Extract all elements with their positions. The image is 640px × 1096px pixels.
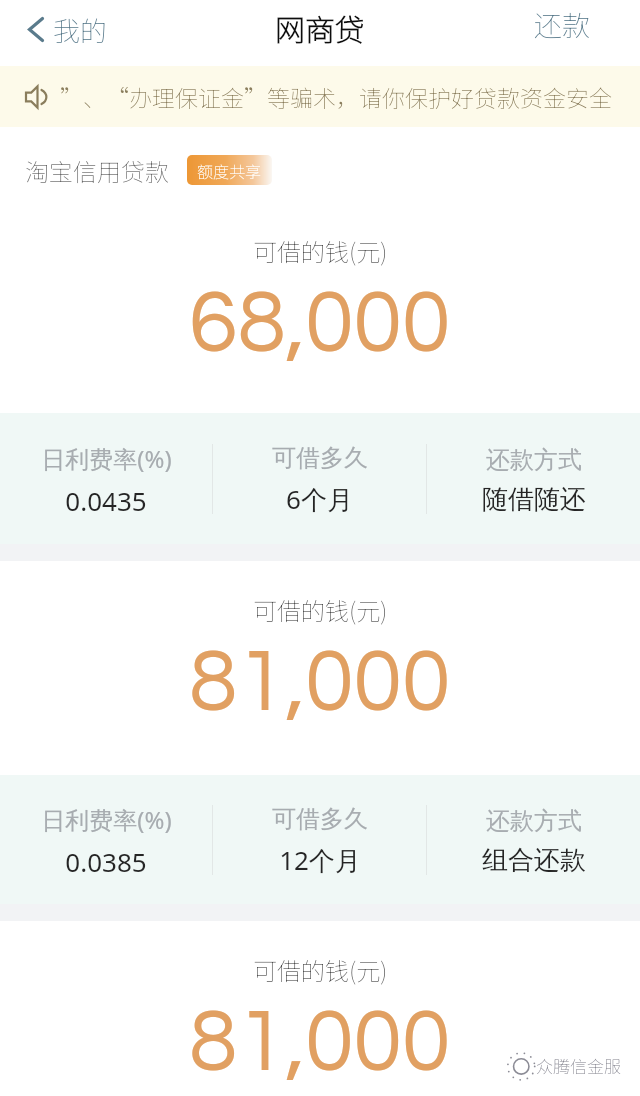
staticText: 可借的钱(元) xyxy=(253,233,388,268)
staticText: 可借多久 xyxy=(272,804,368,834)
staticText: 额度共享 xyxy=(197,159,262,182)
button[interactable]: 可借的钱(元) xyxy=(0,561,640,775)
staticText: 还款方式 xyxy=(486,806,582,836)
staticText: 随借随还 xyxy=(482,483,586,516)
staticText: 81,000 xyxy=(189,998,451,1089)
staticText: 我的 xyxy=(53,10,107,49)
staticText: 0.0385 xyxy=(65,844,147,879)
button[interactable]: 返回 xyxy=(0,4,125,63)
button[interactable]: 公告 xyxy=(0,66,640,127)
staticText: 可借多久 xyxy=(272,443,368,473)
staticText: 淘宝信用贷款 xyxy=(25,153,169,188)
staticText: 网商贷 xyxy=(275,6,365,49)
staticText: 可借的钱(元) xyxy=(253,952,388,987)
staticText: 81,000 xyxy=(189,638,451,729)
staticText: 68,000 xyxy=(189,279,451,370)
staticText: 众腾信金服 xyxy=(536,1053,621,1078)
staticText: 日利费率(%) xyxy=(41,803,172,836)
staticText: 6个月 xyxy=(286,481,353,517)
staticText: ”、“办理保证金”等骗术，请你保护好贷款资金安全 xyxy=(60,80,612,113)
button[interactable]: 还款 xyxy=(510,1,640,66)
button[interactable]: 可借的钱(元) xyxy=(0,921,640,1096)
other: 公告 xyxy=(25,86,50,108)
staticText: 日利费率(%) xyxy=(41,442,172,475)
other: 返回 xyxy=(28,17,44,42)
staticText: 还款 xyxy=(534,4,591,45)
button[interactable]: 可借的钱(元) xyxy=(0,201,640,413)
staticText: 0.0435 xyxy=(65,483,147,518)
staticText: 可借的钱(元) xyxy=(253,592,388,627)
staticText: 组合还款 xyxy=(482,844,586,877)
staticText: 还款方式 xyxy=(486,445,582,475)
staticText: 12个月 xyxy=(279,842,361,878)
